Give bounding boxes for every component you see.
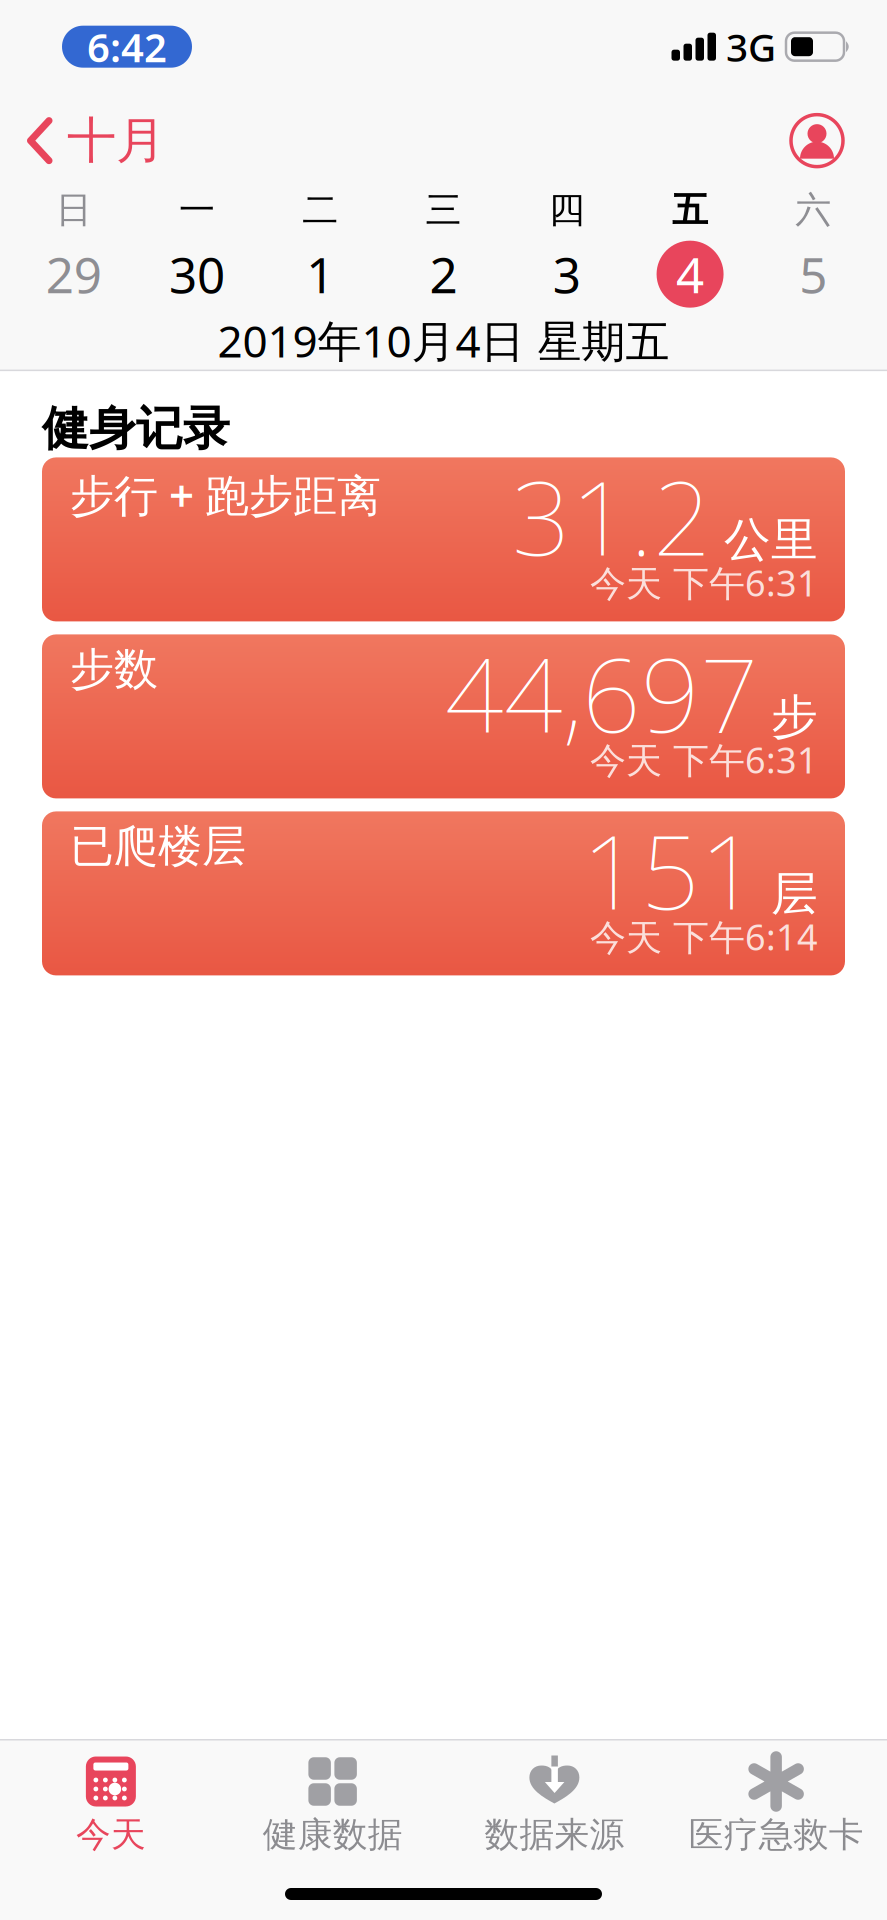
staticText: 今天 下午6:14 [590, 913, 818, 960]
staticText: 六 [795, 188, 831, 232]
staticText: 健身记录 [42, 400, 230, 457]
staticText: 日 [56, 188, 92, 232]
staticText: 5 [799, 241, 827, 307]
staticText: 3 [553, 241, 581, 307]
staticText: 今天 [76, 1813, 146, 1856]
staticText: 医疗急救卡 [689, 1813, 864, 1856]
button[interactable]: 5 [752, 241, 875, 307]
button[interactable]: 已爬楼层 [42, 811, 845, 975]
staticText: 今天 下午6:31 [590, 736, 818, 783]
staticText: 31.2 [512, 447, 712, 584]
button[interactable]: 健康数据 [222, 1754, 444, 1856]
staticText: 今天 下午6:31 [590, 559, 818, 606]
staticText: 十月 [67, 110, 165, 171]
button[interactable]: 数据来源 [443, 1754, 665, 1856]
button[interactable]: 1 [259, 241, 382, 307]
button[interactable]: 3 [505, 241, 628, 307]
staticText: 2 [429, 241, 457, 307]
staticText: 五 [672, 188, 708, 232]
button[interactable]: 十月 [27, 110, 165, 171]
staticText: 4 [676, 241, 704, 307]
staticText: 三 [425, 188, 461, 232]
button[interactable]: 29 [12, 241, 135, 307]
staticText: 步数 [70, 642, 158, 696]
staticText: 一 [179, 188, 215, 232]
staticText: 层 [771, 865, 818, 922]
staticText: 二 [302, 188, 338, 232]
staticText: 数据来源 [484, 1813, 624, 1856]
button[interactable]: 30 [135, 241, 259, 307]
staticText: 29 [46, 241, 102, 307]
staticText: 步行 + 跑步距离 [70, 465, 381, 524]
staticText: 3G [726, 21, 776, 72]
staticText: 步 [771, 688, 818, 745]
button[interactable]: 2 [382, 241, 505, 307]
button[interactable]: 6:42 [62, 26, 192, 68]
staticText: 健康数据 [263, 1813, 403, 1856]
button[interactable]: 医疗急救卡 [665, 1754, 887, 1856]
button[interactable]: 步数 [42, 634, 845, 798]
staticText: 6:42 [87, 20, 167, 73]
button[interactable]: 今天 [0, 1754, 222, 1856]
button[interactable]: 步行 + 跑步距离 [42, 457, 845, 621]
button[interactable]: 4 [628, 241, 752, 307]
staticText: 151 [582, 801, 759, 938]
button[interactable] [791, 115, 843, 167]
staticText: 四 [549, 188, 585, 232]
staticText: 2019年10月4日 星期五 [217, 311, 669, 370]
staticText: 公里 [724, 511, 818, 568]
staticText: 44,697 [445, 624, 759, 761]
staticText: 已爬楼层 [70, 819, 246, 873]
staticText: 1 [306, 241, 334, 307]
staticText: 30 [169, 241, 225, 307]
